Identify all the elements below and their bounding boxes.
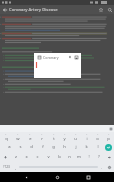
staticText: n — [68, 154, 71, 160]
staticText: l — [97, 144, 99, 150]
button[interactable]: 1 — [92, 132, 103, 142]
staticText: p — [107, 136, 110, 142]
button[interactable]: 1 — [0, 132, 12, 142]
button[interactable]: b — [54, 152, 64, 162]
staticText: ?123 — [3, 165, 10, 169]
staticText: Coronary Artery D… — [43, 55, 67, 60]
button[interactable]: Emoji — [105, 162, 114, 172]
button[interactable]: 1 — [81, 132, 92, 142]
staticText: h — [63, 144, 66, 150]
button[interactable]: Search — [105, 5, 114, 14]
staticText: 1 — [53, 133, 55, 136]
staticText: c — [36, 154, 39, 160]
staticText: u — [74, 136, 77, 142]
button[interactable]: z — [10, 152, 21, 162]
button[interactable]: Save — [73, 54, 79, 60]
button[interactable]: 1 — [59, 132, 70, 142]
staticText: ? — [98, 154, 100, 160]
staticText: 1 — [86, 133, 88, 136]
staticText: v — [47, 154, 50, 160]
staticText: j — [75, 144, 77, 150]
button[interactable]: ?123 — [0, 162, 12, 172]
staticText: s — [19, 144, 22, 150]
staticText: b — [58, 154, 61, 160]
button[interactable]: ! — [84, 152, 94, 162]
staticText: y — [63, 136, 66, 142]
button[interactable]: Keyboard settings — [107, 125, 114, 132]
button[interactable]: Format — [67, 54, 73, 60]
button[interactable]: l — [92, 142, 103, 152]
button[interactable]: Recent apps — [83, 172, 93, 182]
staticText: e — [29, 136, 32, 142]
staticText: , — [15, 165, 17, 170]
staticText: a — [8, 144, 11, 150]
button[interactable]: x — [21, 152, 32, 162]
button[interactable]: v — [43, 152, 54, 162]
button[interactable]: j — [70, 142, 81, 152]
button[interactable]: Comma — [12, 162, 19, 172]
staticText: m — [77, 154, 81, 160]
button[interactable]: Note type — [36, 54, 42, 60]
staticText: ! — [88, 154, 90, 160]
staticText: x — [25, 154, 28, 160]
button[interactable]: h — [59, 142, 70, 152]
staticText: g — [52, 144, 55, 150]
staticText: f — [42, 144, 44, 150]
staticText: 1 — [5, 133, 7, 136]
button[interactable]: Home — [52, 172, 62, 182]
staticText: 1 — [17, 133, 19, 136]
button[interactable]: n — [64, 152, 74, 162]
staticText: 1 — [97, 133, 99, 136]
button[interactable]: 1 — [36, 132, 48, 142]
button[interactable]: Shift — [0, 152, 10, 162]
staticText: 1 — [29, 133, 31, 136]
staticText: Coronary Artery Disease — [9, 7, 96, 13]
staticText: i — [86, 136, 88, 142]
staticText: z — [15, 154, 17, 160]
staticText: w — [16, 136, 20, 142]
button[interactable]: Backspace — [104, 152, 114, 162]
button[interactable]: 1 — [12, 132, 24, 142]
staticText: o — [96, 136, 99, 142]
button[interactable]: 1 — [103, 132, 114, 142]
button[interactable]: Bookmark — [96, 5, 105, 14]
staticText: 1 — [108, 133, 110, 136]
button[interactable]: f — [37, 142, 48, 152]
button[interactable]: Back — [21, 172, 31, 182]
staticText: 1 — [41, 133, 43, 136]
staticText: q — [5, 136, 8, 142]
button[interactable]: c — [32, 152, 43, 162]
staticText: t — [53, 136, 55, 142]
button[interactable]: 1 — [70, 132, 81, 142]
staticText: d — [30, 144, 33, 150]
button[interactable]: g — [48, 142, 59, 152]
button[interactable]: s — [15, 142, 26, 152]
staticText: . — [101, 165, 103, 170]
button[interactable]: 1 — [24, 132, 36, 142]
button[interactable]: Enter — [103, 142, 114, 152]
staticText: r — [41, 136, 43, 142]
button[interactable]: Space — [19, 165, 98, 169]
button[interactable]: k — [81, 142, 92, 152]
button[interactable]: ? — [94, 152, 104, 162]
button[interactable]: m — [74, 152, 84, 162]
button[interactable]: Back — [0, 5, 9, 14]
button[interactable]: d — [26, 142, 37, 152]
staticText: 1 — [75, 133, 77, 136]
staticText: 1 — [64, 133, 66, 136]
button[interactable]: a — [3, 142, 15, 152]
button[interactable]: 1 — [48, 132, 59, 142]
staticText: k — [85, 144, 88, 150]
